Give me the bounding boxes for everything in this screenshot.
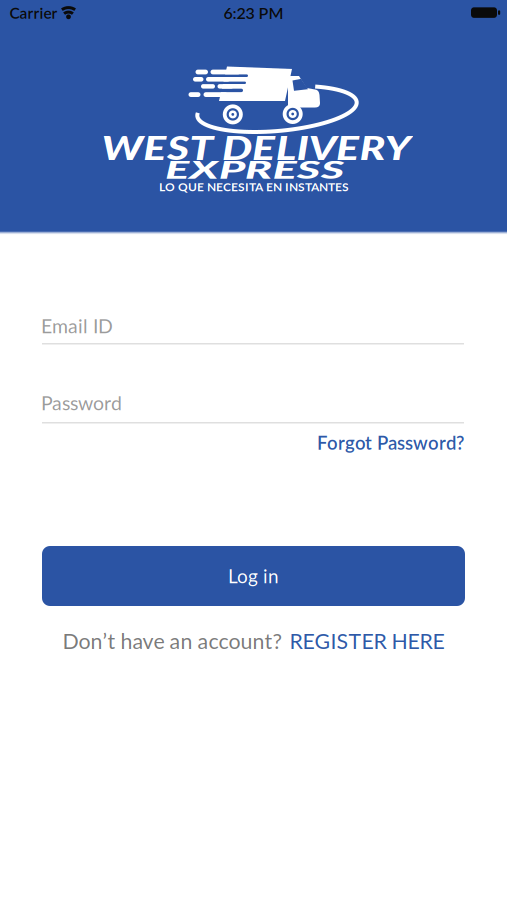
staticText: Don’t have an account? xyxy=(62,628,282,654)
button[interactable]: REGISTER HERE xyxy=(289,628,444,654)
button[interactable]: Password xyxy=(41,391,464,424)
staticText: Email ID xyxy=(41,314,113,337)
staticText: Carrier xyxy=(9,3,57,22)
staticText: Forgot Password? xyxy=(317,431,464,454)
staticText: REGISTER HERE xyxy=(289,628,444,654)
staticText: Password xyxy=(41,391,122,414)
staticText: 6:23 PM xyxy=(223,3,283,22)
staticText: WEST DELIVERY xyxy=(138,128,374,167)
staticText: EXPRESS xyxy=(206,155,303,184)
staticText: LO QUE NECESITA EN INSTANTES xyxy=(159,179,349,194)
button[interactable]: Email ID xyxy=(41,314,464,345)
staticText: Log in xyxy=(228,565,279,587)
button[interactable]: Log in xyxy=(42,546,465,606)
button[interactable]: Forgot Password? xyxy=(317,431,464,454)
